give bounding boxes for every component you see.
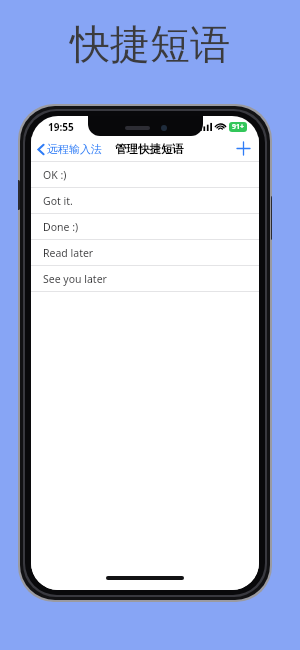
staticText: 远程输入法 [47, 142, 102, 156]
button[interactable]: Done :) [31, 214, 259, 239]
staticText: Done :) [43, 220, 79, 234]
button[interactable]: 远程输入法 [31, 139, 108, 159]
staticText: 快捷短语 [70, 19, 230, 69]
button[interactable]: Got it. [31, 188, 259, 213]
staticText: 管理快捷短语 [115, 142, 184, 156]
button[interactable]: See you later [31, 266, 259, 291]
staticText: Read later [43, 246, 94, 260]
button[interactable]: Add shortcut [228, 138, 259, 159]
staticText: OK :) [43, 168, 67, 182]
staticText: 91+ [232, 122, 245, 132]
button[interactable]: OK :) [31, 162, 259, 187]
staticText: 19:55 [48, 120, 74, 134]
button[interactable]: Read later [31, 240, 259, 265]
staticText: Got it. [43, 194, 73, 208]
staticText: See you later [43, 272, 107, 286]
